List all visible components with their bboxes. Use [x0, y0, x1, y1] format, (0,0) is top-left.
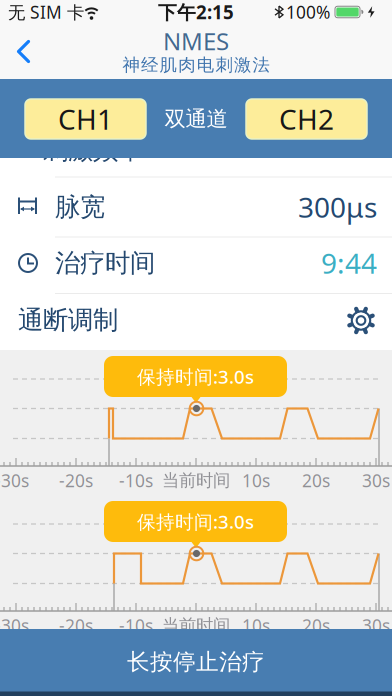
button[interactable]: Settings [347, 306, 375, 334]
staticText: CH1 [58, 100, 113, 138]
staticText: 长按停止治疗 [127, 648, 265, 676]
button[interactable]: CH2 [246, 99, 367, 139]
staticText: -20s [59, 614, 93, 637]
staticText: 双通道 [164, 106, 227, 132]
staticText: 20s [302, 469, 330, 492]
staticText: 30s [362, 469, 390, 492]
staticText: NMES [163, 25, 229, 57]
button[interactable]: 长按停止治疗 [0, 629, 392, 696]
staticText: -30s [0, 614, 29, 637]
button[interactable]: 保持时间:3.0s [104, 501, 287, 542]
staticText: 9:44 [321, 244, 377, 282]
staticText: 30s [362, 614, 390, 637]
staticText: 下午2:15 [158, 0, 234, 24]
staticText: 保持时间:3.0s [137, 364, 254, 389]
staticText: 10s [242, 469, 270, 492]
staticText: -20s [59, 469, 93, 492]
staticText: 300μs [298, 188, 377, 226]
staticText: 脉宽 [55, 191, 105, 222]
staticText: 无 SIM 卡 [8, 0, 84, 23]
staticText: 当前时间 [162, 470, 230, 491]
button[interactable]: 保持时间:3.0s [104, 356, 287, 397]
staticText: 神经肌肉电刺激法 [122, 54, 270, 76]
staticText: -10s [119, 469, 153, 492]
staticText: 刺激频率 [43, 134, 143, 165]
staticText: 10s [242, 614, 270, 637]
button[interactable]: 通断调制 [0, 292, 392, 348]
staticText: 100% [286, 0, 330, 23]
button[interactable]: Back [14, 39, 34, 63]
staticText: 20s [302, 614, 330, 637]
staticText: 当前时间 [162, 615, 230, 636]
staticText: 治疗时间 [55, 247, 155, 278]
staticText: CH2 [279, 100, 334, 138]
button[interactable]: CH1 [25, 99, 146, 139]
button[interactable]: 脉宽 [0, 177, 392, 237]
staticText: -30s [0, 469, 29, 492]
staticText: 保持时间:3.0s [137, 509, 254, 534]
button[interactable]: 治疗时间 [0, 234, 392, 291]
staticText: -10s [119, 614, 153, 637]
staticText: 通断调制 [18, 304, 118, 335]
